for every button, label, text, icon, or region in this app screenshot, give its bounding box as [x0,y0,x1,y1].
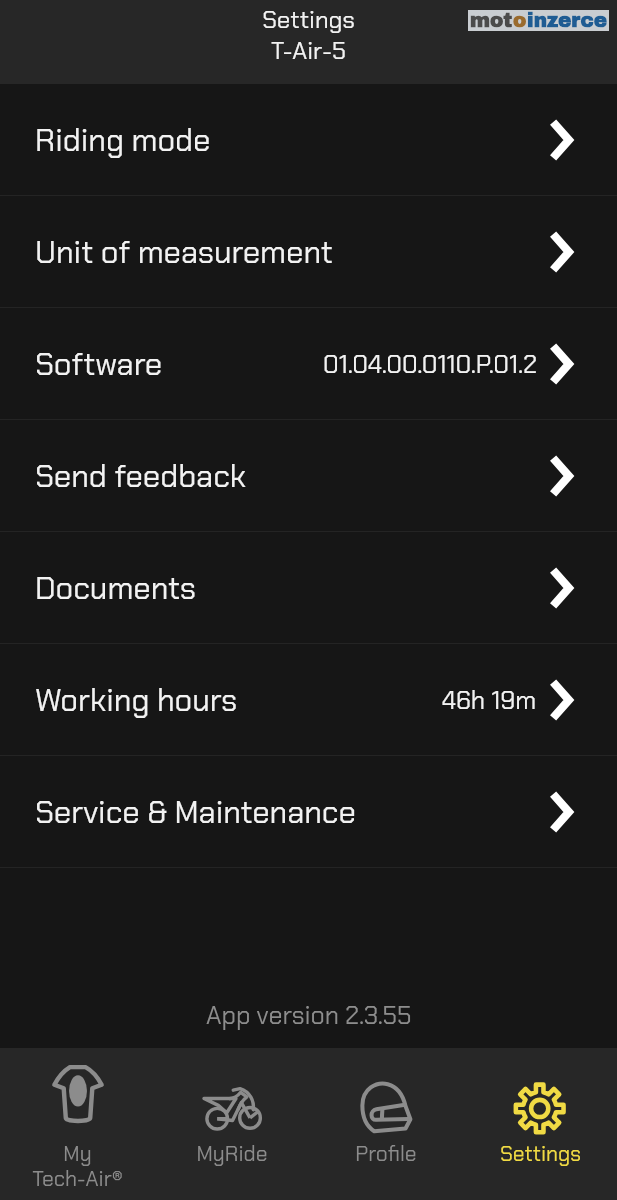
staticText: Software [35,344,163,384]
staticText: MyRide [196,1140,268,1167]
staticText: Profile [355,1140,417,1167]
staticText: Documents [35,568,196,608]
staticText: Settings [262,4,355,35]
button[interactable]: Documents [0,532,617,643]
button[interactable]: My Tech-Air [0,1048,155,1193]
staticText: Unit of measurement [35,232,333,272]
button[interactable]: Working hours [0,644,617,755]
staticText: Working hours [35,680,238,720]
staticText: 01.04.00.0110.P.01.2 [323,348,537,380]
button[interactable]: Software [0,308,617,419]
staticText: Riding mode [35,120,211,160]
staticText: App version 2.3.55 [206,999,412,1031]
button[interactable]: MyRide [155,1048,309,1167]
button[interactable]: Unit of measurement [0,196,617,307]
staticText: T-Air-5 [271,35,346,66]
button[interactable]: Riding mode [0,84,617,195]
button[interactable]: Service & Maintenance [0,756,617,867]
staticText: 46h 19m [442,684,537,716]
button[interactable]: Settings [463,1048,617,1167]
staticText: Send feedback [35,456,246,496]
button[interactable]: Send feedback [0,420,617,531]
staticText: My Tech-Air® [32,1140,123,1193]
staticText: inzerce [527,9,608,30]
staticText: o [513,9,527,30]
staticText: mot [470,9,513,30]
button[interactable]: Profile [309,1048,463,1167]
staticText: Service & Maintenance [35,792,356,832]
staticText: Settings [500,1140,581,1167]
